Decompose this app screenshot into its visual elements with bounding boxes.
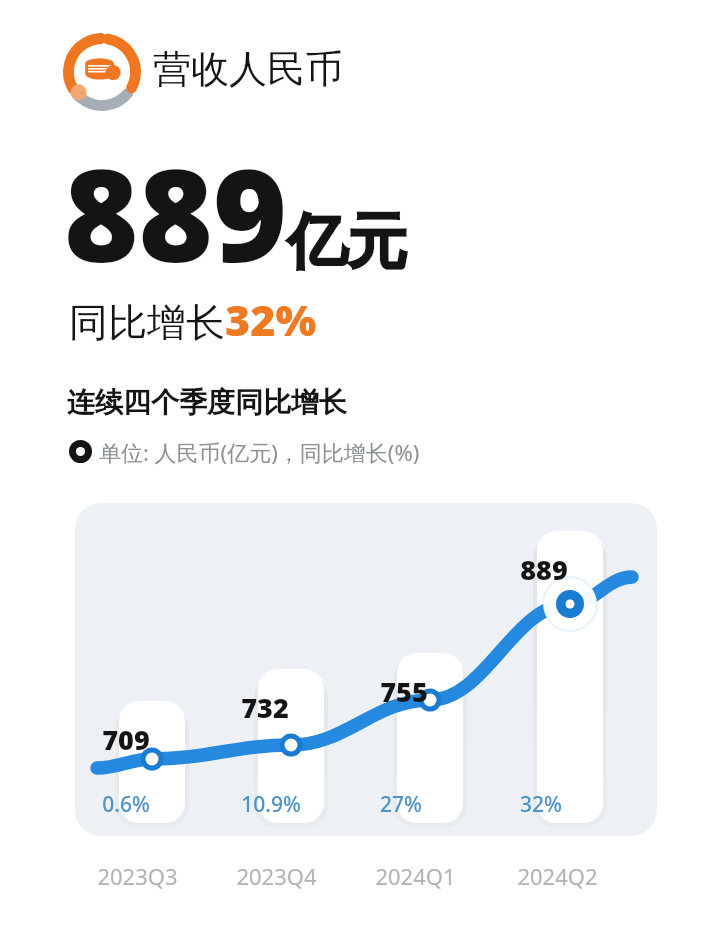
staticText: 32% <box>520 790 562 819</box>
staticText: 2024Q1 <box>375 861 456 891</box>
staticText: 营收人民币 <box>153 45 343 93</box>
staticText: 连续四个季度同比增长 <box>67 385 347 420</box>
staticText: 732 <box>241 689 289 726</box>
staticText: 889亿元 <box>64 126 408 299</box>
button[interactable]: 营收人民币 <box>153 45 343 93</box>
staticText: 27% <box>380 790 422 819</box>
staticText: 2024Q2 <box>517 861 598 891</box>
staticText: 2023Q4 <box>236 861 317 891</box>
staticText: 709 <box>102 721 150 758</box>
button[interactable]: 同比增长32% <box>69 290 317 349</box>
staticText: 10.9% <box>241 790 301 819</box>
button[interactable]: 709 <box>75 503 657 836</box>
button[interactable]: Revenue <box>61 31 143 113</box>
staticText: 889 <box>520 551 568 588</box>
staticText: 0.6% <box>102 790 150 819</box>
staticText: 755 <box>380 673 428 710</box>
staticText: 2023Q3 <box>97 861 178 891</box>
staticText: 同比增长32% <box>69 290 317 349</box>
staticText: 单位: 人民币(亿元)，同比增长(%) <box>99 437 420 467</box>
